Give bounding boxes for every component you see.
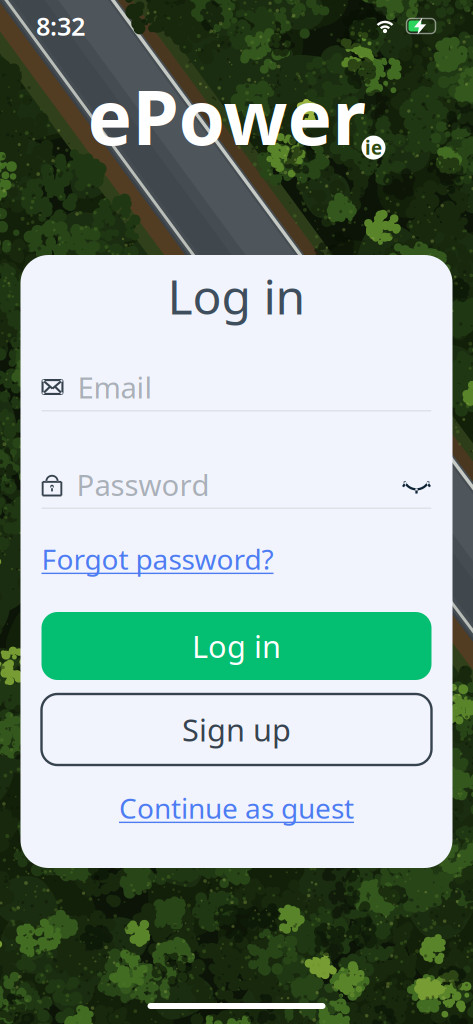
- staticText: 8:32: [36, 9, 85, 43]
- button[interactable]: Log in: [41, 612, 431, 680]
- staticText: Email: [77, 367, 152, 406]
- button[interactable]: Continue as guest: [119, 794, 354, 822]
- staticText: Password: [76, 465, 209, 504]
- staticText: Forgot password?: [41, 540, 273, 578]
- staticText: Log in: [192, 626, 281, 666]
- staticText: ePower: [87, 66, 365, 166]
- staticText: Log in: [167, 264, 305, 328]
- button[interactable]: Forgot password?: [41, 545, 273, 573]
- button[interactable]: Sign up: [41, 694, 431, 765]
- staticText: Continue as guest: [119, 789, 354, 827]
- staticText: ie: [365, 135, 382, 160]
- button[interactable]: Show password: [401, 473, 431, 495]
- staticText: Sign up: [182, 709, 291, 750]
